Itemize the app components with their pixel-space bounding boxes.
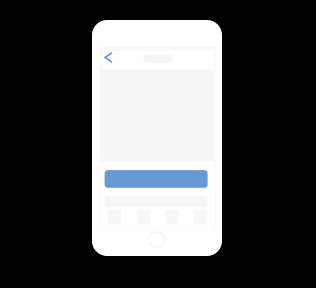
button[interactable]: Profile tab bbox=[186, 208, 215, 229]
button[interactable]: Home tab bbox=[100, 208, 129, 229]
button[interactable]: Continue bbox=[105, 170, 208, 188]
button[interactable]: Activity tab bbox=[158, 208, 186, 229]
button[interactable]: Back bbox=[104, 52, 118, 63]
button[interactable]: Home bbox=[149, 232, 165, 247]
button[interactable]: Search tab bbox=[129, 208, 158, 229]
